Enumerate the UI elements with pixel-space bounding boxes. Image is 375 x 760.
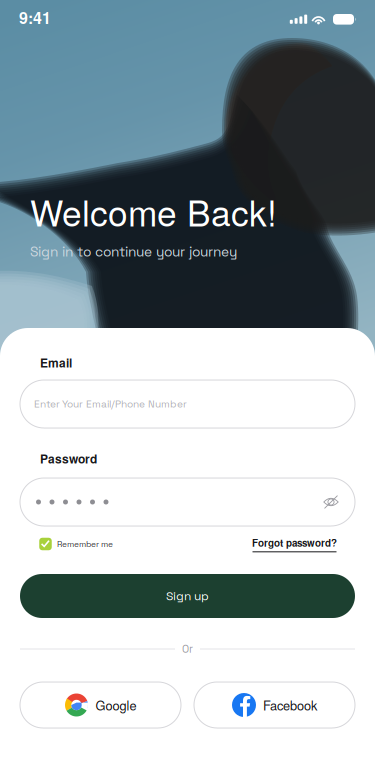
- staticText: Facebook: [263, 696, 317, 714]
- staticText: Sign up: [166, 588, 209, 604]
- staticText: Google: [95, 696, 136, 714]
- staticText: Welcome Back!: [30, 186, 277, 237]
- button[interactable]: Sign up: [20, 574, 355, 618]
- staticText: Sign in to continue your journey: [30, 243, 237, 260]
- button[interactable]: Remember me: [39, 537, 113, 550]
- staticText: Forgot password?: [252, 536, 337, 550]
- staticText: Email: [40, 354, 72, 371]
- staticText: Remember me: [57, 539, 113, 549]
- button[interactable]: Show password: [323, 494, 339, 510]
- staticText: Password: [40, 450, 97, 467]
- staticText: Enter Your Email/Phone Number: [34, 397, 187, 410]
- button[interactable]: Facebook: [194, 682, 355, 728]
- button[interactable]: Forgot password?: [252, 536, 337, 552]
- button[interactable]: Google: [20, 682, 181, 728]
- staticText: Or: [182, 642, 193, 656]
- staticText: 9:41: [19, 6, 51, 29]
